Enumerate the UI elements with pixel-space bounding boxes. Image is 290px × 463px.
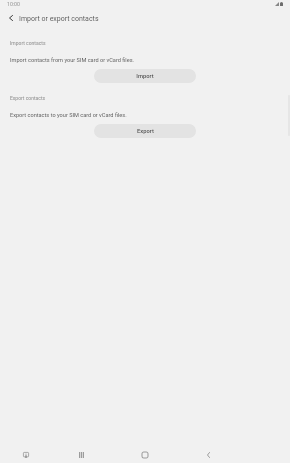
- staticText: Export contacts to your SIM card or vCar…: [10, 112, 127, 119]
- button[interactable]: Hide keyboard: [15, 444, 37, 463]
- staticText: Import or export contacts: [19, 15, 99, 23]
- button[interactable]: Home: [134, 444, 156, 463]
- staticText: 10:00: [7, 1, 20, 7]
- staticText: Export contacts: [10, 95, 46, 101]
- button[interactable]: Navigate up: [0, 7, 22, 30]
- staticText: Import: [136, 73, 154, 80]
- button[interactable]: Import: [94, 69, 196, 83]
- button[interactable]: Export: [94, 124, 196, 138]
- staticText: Export: [137, 128, 154, 135]
- staticText: Import contacts: [10, 40, 46, 46]
- button[interactable]: Back: [197, 444, 219, 463]
- button[interactable]: Recent apps: [70, 444, 92, 463]
- staticText: Import contacts from your SIM card or vC…: [10, 57, 135, 64]
